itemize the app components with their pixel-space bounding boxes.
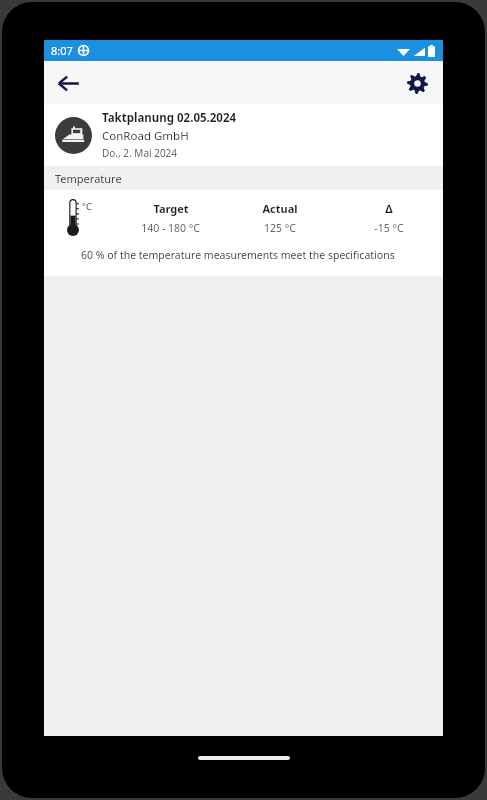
staticText: Actual	[262, 201, 298, 216]
staticText: ConRoad GmbH	[102, 128, 189, 144]
staticText: -15 °C	[374, 221, 404, 235]
staticText: Temperature	[55, 171, 122, 186]
button[interactable]: Settings	[397, 63, 437, 103]
staticText: Do., 2. Mai 2024	[102, 146, 178, 160]
staticText: °C	[82, 200, 93, 213]
staticText: 60 % of the temperature measurements mee…	[81, 248, 395, 262]
button[interactable]: Back	[48, 63, 88, 103]
button[interactable]: Taktplanung 02.05.2024	[44, 104, 443, 166]
staticText: Taktplanung 02.05.2024	[102, 110, 237, 126]
staticText: 125 °C	[264, 221, 296, 235]
staticText: 140 - 180 °C	[141, 221, 200, 235]
staticText: 8:07	[51, 43, 73, 58]
staticText: Target	[153, 201, 189, 216]
button[interactable]: °C	[44, 190, 443, 276]
staticText: Δ	[385, 201, 393, 216]
